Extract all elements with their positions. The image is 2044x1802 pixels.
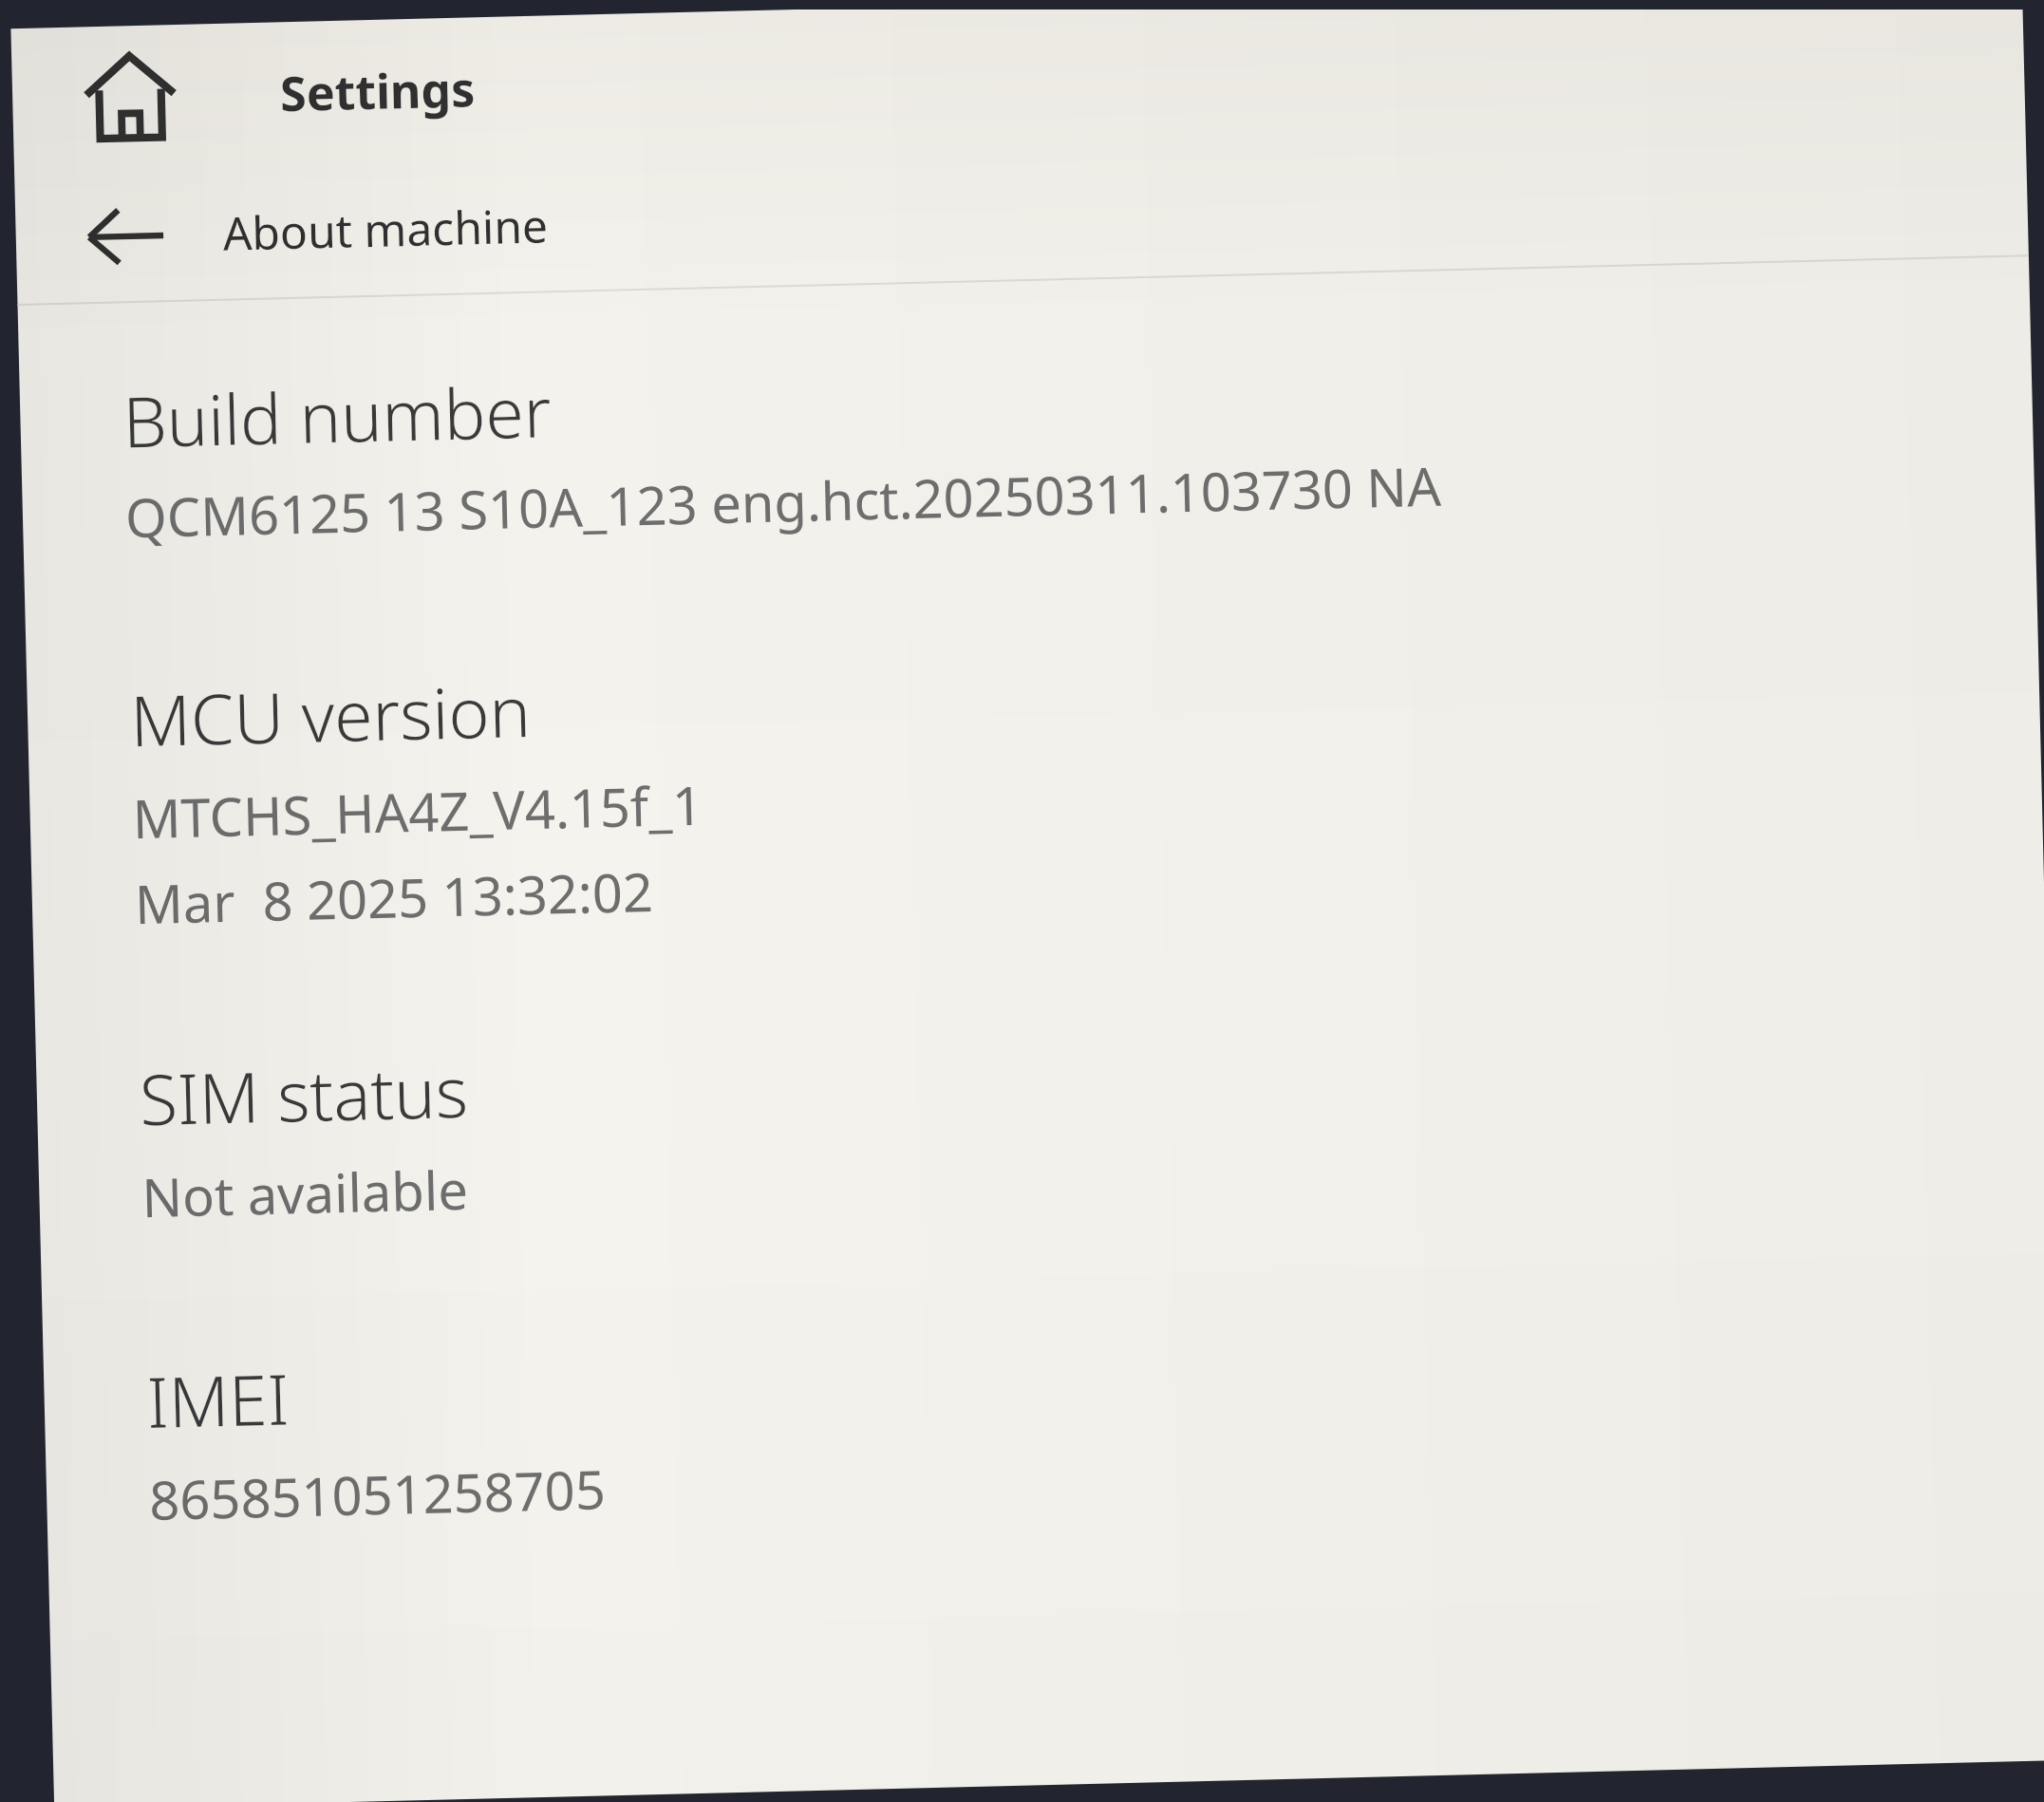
staticText: 865851051258705 (148, 1452, 607, 1535)
staticText: IMEI (146, 1350, 290, 1448)
staticText: MTCHS_HA4Z_V4.15f_1 (132, 768, 704, 854)
button[interactable]: Build number (122, 324, 1997, 557)
staticText: Mar 8 2025 13:32:02 (134, 854, 654, 939)
button[interactable]: SIM status (138, 1002, 2014, 1236)
staticText: Settings (279, 56, 476, 126)
staticText: SIM status (138, 1043, 469, 1145)
staticText: About machine (222, 194, 549, 264)
button[interactable]: Back (62, 172, 188, 298)
staticText: QCM6125 13 S10A_123 eng.hct.20250311.103… (124, 449, 1443, 553)
staticText: Build number (122, 363, 552, 467)
button[interactable]: Home (64, 31, 196, 163)
button[interactable]: MCU version (129, 623, 2006, 943)
staticText: Not available (141, 1152, 469, 1233)
staticText: MCU version (129, 663, 532, 766)
button[interactable]: IMEI (146, 1305, 2021, 1539)
